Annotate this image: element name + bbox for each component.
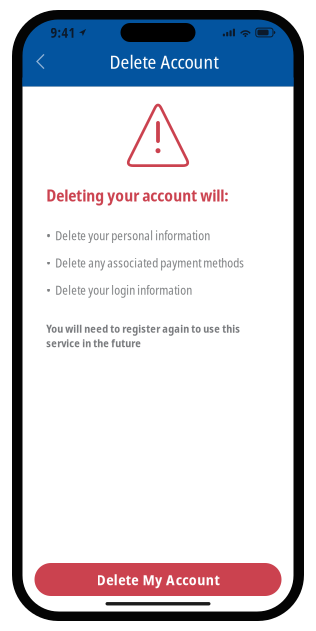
staticText: You will need to register again to use t… (46, 321, 240, 350)
button[interactable]: Delete My Account (34, 563, 281, 596)
staticText: Delete any associated payment methods (55, 255, 244, 271)
button[interactable]: Back (22, 45, 58, 77)
staticText: Delete Account (109, 49, 218, 74)
staticText: Delete My Account (97, 569, 219, 590)
staticText: Delete your login information (55, 282, 192, 298)
staticText: Deleting your account will: (46, 184, 228, 206)
staticText: Delete your personal information (55, 227, 210, 244)
staticText: • (46, 227, 51, 244)
staticText: • (46, 255, 51, 271)
staticText: 9:41 (50, 23, 75, 42)
staticText: • (46, 282, 51, 298)
